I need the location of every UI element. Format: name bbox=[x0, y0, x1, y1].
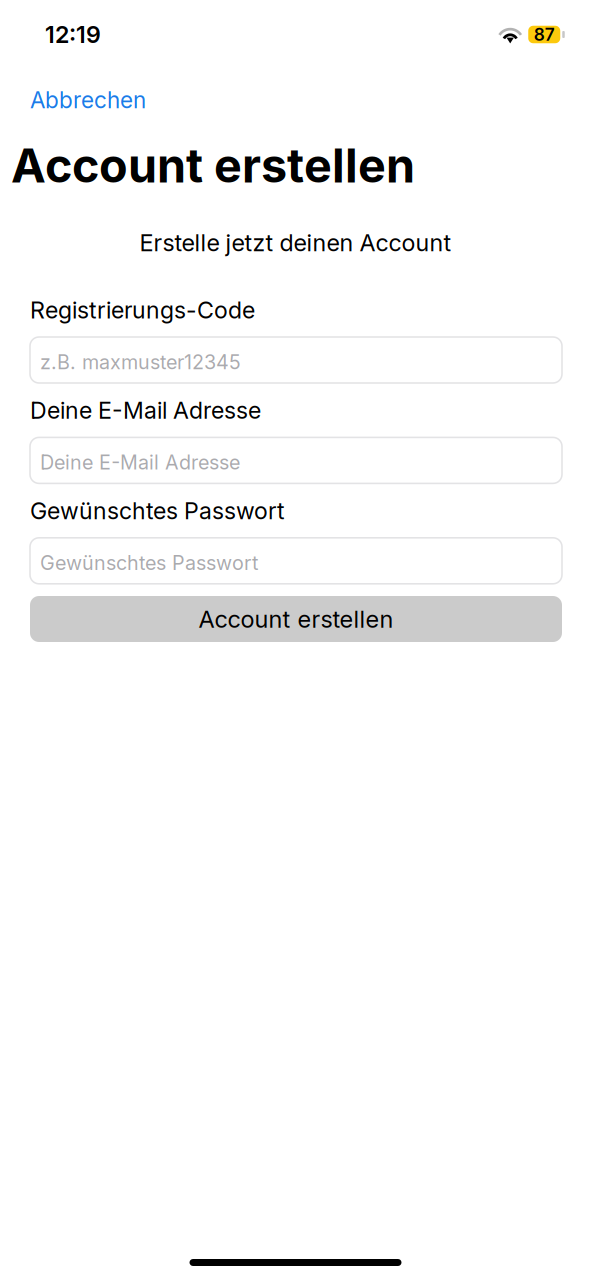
button[interactable]: z.B. maxmuster12345 bbox=[30, 337, 562, 383]
staticText: Gewünschtes Passwort bbox=[40, 551, 258, 575]
staticText: Erstelle jetzt deinen Account bbox=[139, 229, 451, 257]
button[interactable]: Abbrechen bbox=[22, 79, 154, 121]
staticText: z.B. maxmuster12345 bbox=[40, 350, 241, 374]
staticText: Deine E-Mail Adresse bbox=[30, 396, 261, 424]
staticText: Deine E-Mail Adresse bbox=[40, 450, 240, 474]
button[interactable]: Gewünschtes Passwort bbox=[30, 538, 562, 584]
staticText: Abbrechen bbox=[30, 86, 146, 114]
staticText: Account erstellen bbox=[198, 605, 393, 633]
staticText: 87 bbox=[534, 24, 555, 45]
staticText: Account erstellen bbox=[11, 137, 415, 194]
button[interactable]: Deine E-Mail Adresse bbox=[30, 437, 562, 483]
staticText: Registrierungs-Code bbox=[30, 296, 255, 324]
staticText: 12:19 bbox=[45, 20, 101, 49]
staticText: Gewünschtes Passwort bbox=[30, 497, 285, 525]
button[interactable]: Account erstellen bbox=[30, 596, 562, 642]
